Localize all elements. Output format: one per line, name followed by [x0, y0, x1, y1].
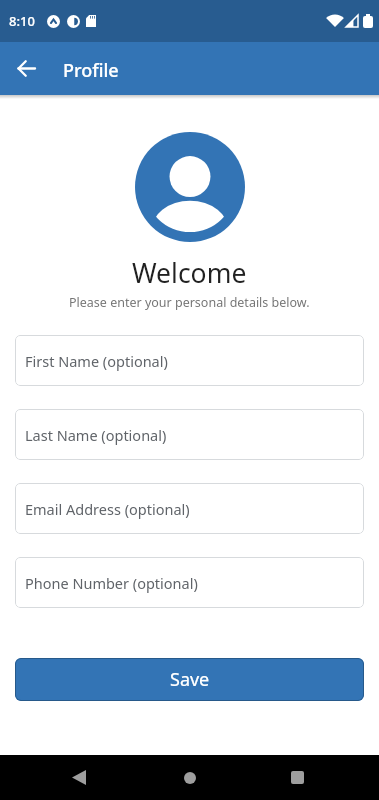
button[interactable]: Last Name (optional): [15, 409, 364, 460]
staticText: First Name (optional): [25, 351, 168, 371]
button[interactable]: Email Address (optional): [15, 483, 364, 534]
staticText: Save: [170, 667, 210, 692]
staticText: Profile: [63, 58, 119, 83]
button[interactable]: [0, 42, 53, 95]
staticText: Phone Number (optional): [25, 573, 198, 593]
button[interactable]: [274, 755, 320, 800]
button[interactable]: [56, 755, 102, 800]
staticText: Please enter your personal details below…: [69, 294, 310, 311]
button[interactable]: First Name (optional): [15, 335, 364, 386]
staticText: Welcome: [132, 255, 247, 291]
staticText: Email Address (optional): [25, 499, 190, 519]
button[interactable]: Phone Number (optional): [15, 557, 364, 608]
button[interactable]: Save: [15, 658, 364, 701]
button[interactable]: [167, 755, 213, 800]
staticText: Last Name (optional): [25, 425, 167, 445]
staticText: 8:10: [9, 12, 35, 30]
